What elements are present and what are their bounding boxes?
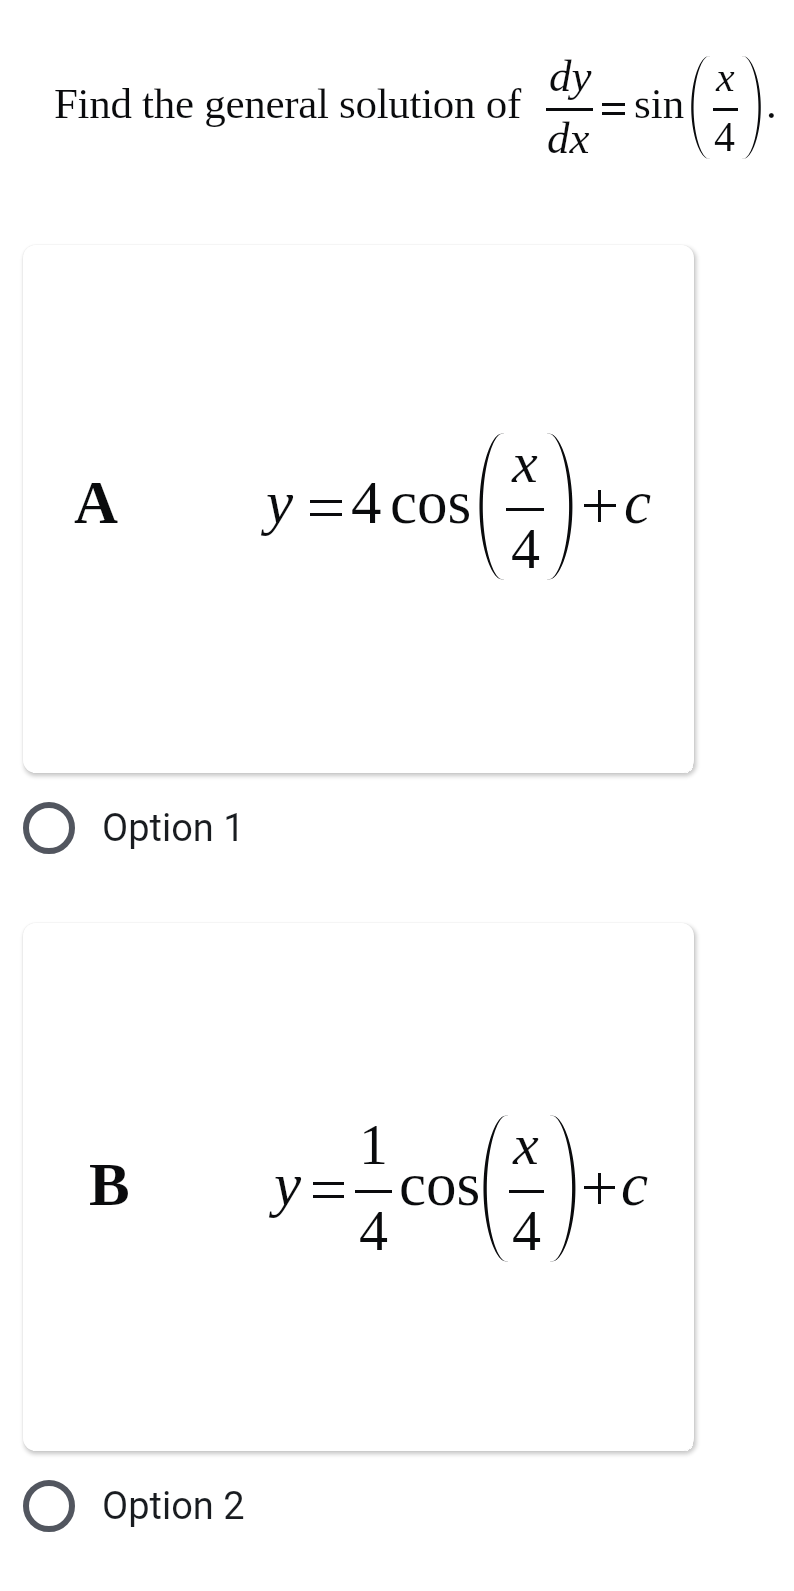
other: Option 1 [23,802,75,854]
staticText: sin [634,80,685,128]
staticText: c [621,1151,649,1219]
button[interactable]: Option 1 [0,787,794,869]
button[interactable]: B [23,923,694,1451]
staticText: 4 [511,516,540,580]
button[interactable]: A [23,245,694,773]
staticText: Find the general solution of [54,80,521,128]
staticText: . [766,80,777,128]
staticText: A [74,469,119,537]
staticText: dy [549,51,592,101]
staticText: cos [399,1151,481,1219]
other: Option 2 [23,1480,75,1532]
staticText: 4 [714,114,735,161]
staticText: 4 [359,1198,388,1262]
staticText: dx [547,113,590,163]
staticText: 4 [351,469,382,537]
staticText: c [624,469,652,537]
staticText: 4 [512,1198,541,1262]
button[interactable]: Option 2 [0,1465,794,1547]
staticText: y [266,469,294,537]
staticText: y [274,1151,302,1219]
staticText: x [513,1112,539,1176]
staticText: B [89,1151,130,1219]
staticText: cos [390,469,472,537]
staticText: x [512,430,538,494]
staticText: x [716,54,735,101]
staticText: Option 2 [102,1484,245,1529]
staticText: Option 1 [102,806,245,851]
staticText: 1 [359,1112,388,1176]
